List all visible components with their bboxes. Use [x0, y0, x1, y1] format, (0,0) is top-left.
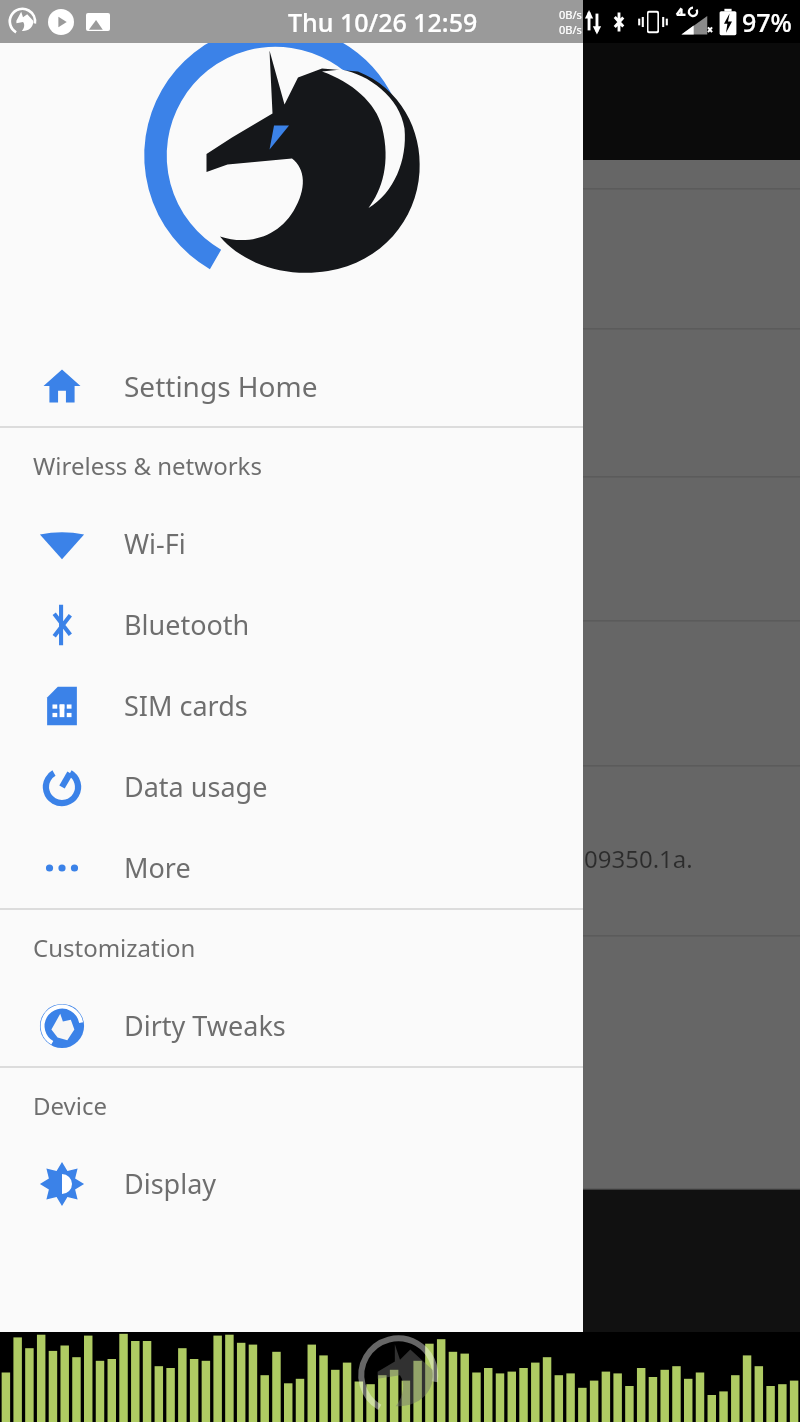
staticText: Bluetooth [124, 606, 250, 643]
staticText: 97% [742, 5, 792, 39]
staticText: Wireless & networks [33, 449, 262, 482]
staticText: 09350.1a. [584, 842, 693, 875]
button[interactable]: Data usage [0, 746, 583, 827]
button[interactable]: Settings Home [0, 345, 583, 426]
staticText: Settings Home [124, 367, 318, 405]
staticText: 0B/s [559, 7, 582, 22]
staticText: Dirty Tweaks [124, 1007, 286, 1044]
button[interactable]: Dirty Tweaks [0, 985, 583, 1066]
staticText: 0B/s [559, 22, 582, 37]
staticText: SIM cards [124, 687, 248, 724]
staticText: Device [33, 1089, 108, 1122]
staticText: Wi-Fi [124, 525, 186, 562]
staticText: Display [124, 1165, 217, 1202]
button[interactable]: Bluetooth [0, 584, 583, 665]
staticText: Thu 10/26 12:59 [288, 5, 478, 39]
button[interactable]: Wi-Fi [0, 503, 583, 584]
staticText: More [124, 849, 191, 886]
button[interactable]: SIM cards [0, 665, 583, 746]
staticText: Customization [33, 931, 196, 964]
button[interactable]: Display [0, 1143, 583, 1224]
button[interactable]: More [0, 827, 583, 908]
staticText: Data usage [124, 768, 268, 805]
